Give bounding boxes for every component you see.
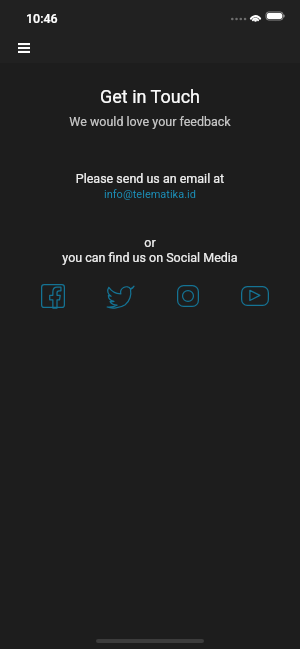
staticText: or (0, 235, 300, 250)
button[interactable]: Menu (10, 34, 38, 62)
staticText: Please send us an email at (0, 171, 300, 186)
staticText: We would love your feedback (0, 114, 300, 129)
button[interactable]: info@telematika.id (104, 188, 196, 201)
button[interactable]: Twitter (104, 281, 136, 311)
staticText: you can find us on Social Media (0, 250, 300, 265)
button[interactable]: Instagram (172, 281, 204, 311)
staticText: Get in Touch (0, 86, 300, 107)
button[interactable]: YouTube (239, 281, 271, 311)
staticText: 10:46 (26, 11, 58, 26)
button[interactable]: Facebook (37, 281, 69, 311)
